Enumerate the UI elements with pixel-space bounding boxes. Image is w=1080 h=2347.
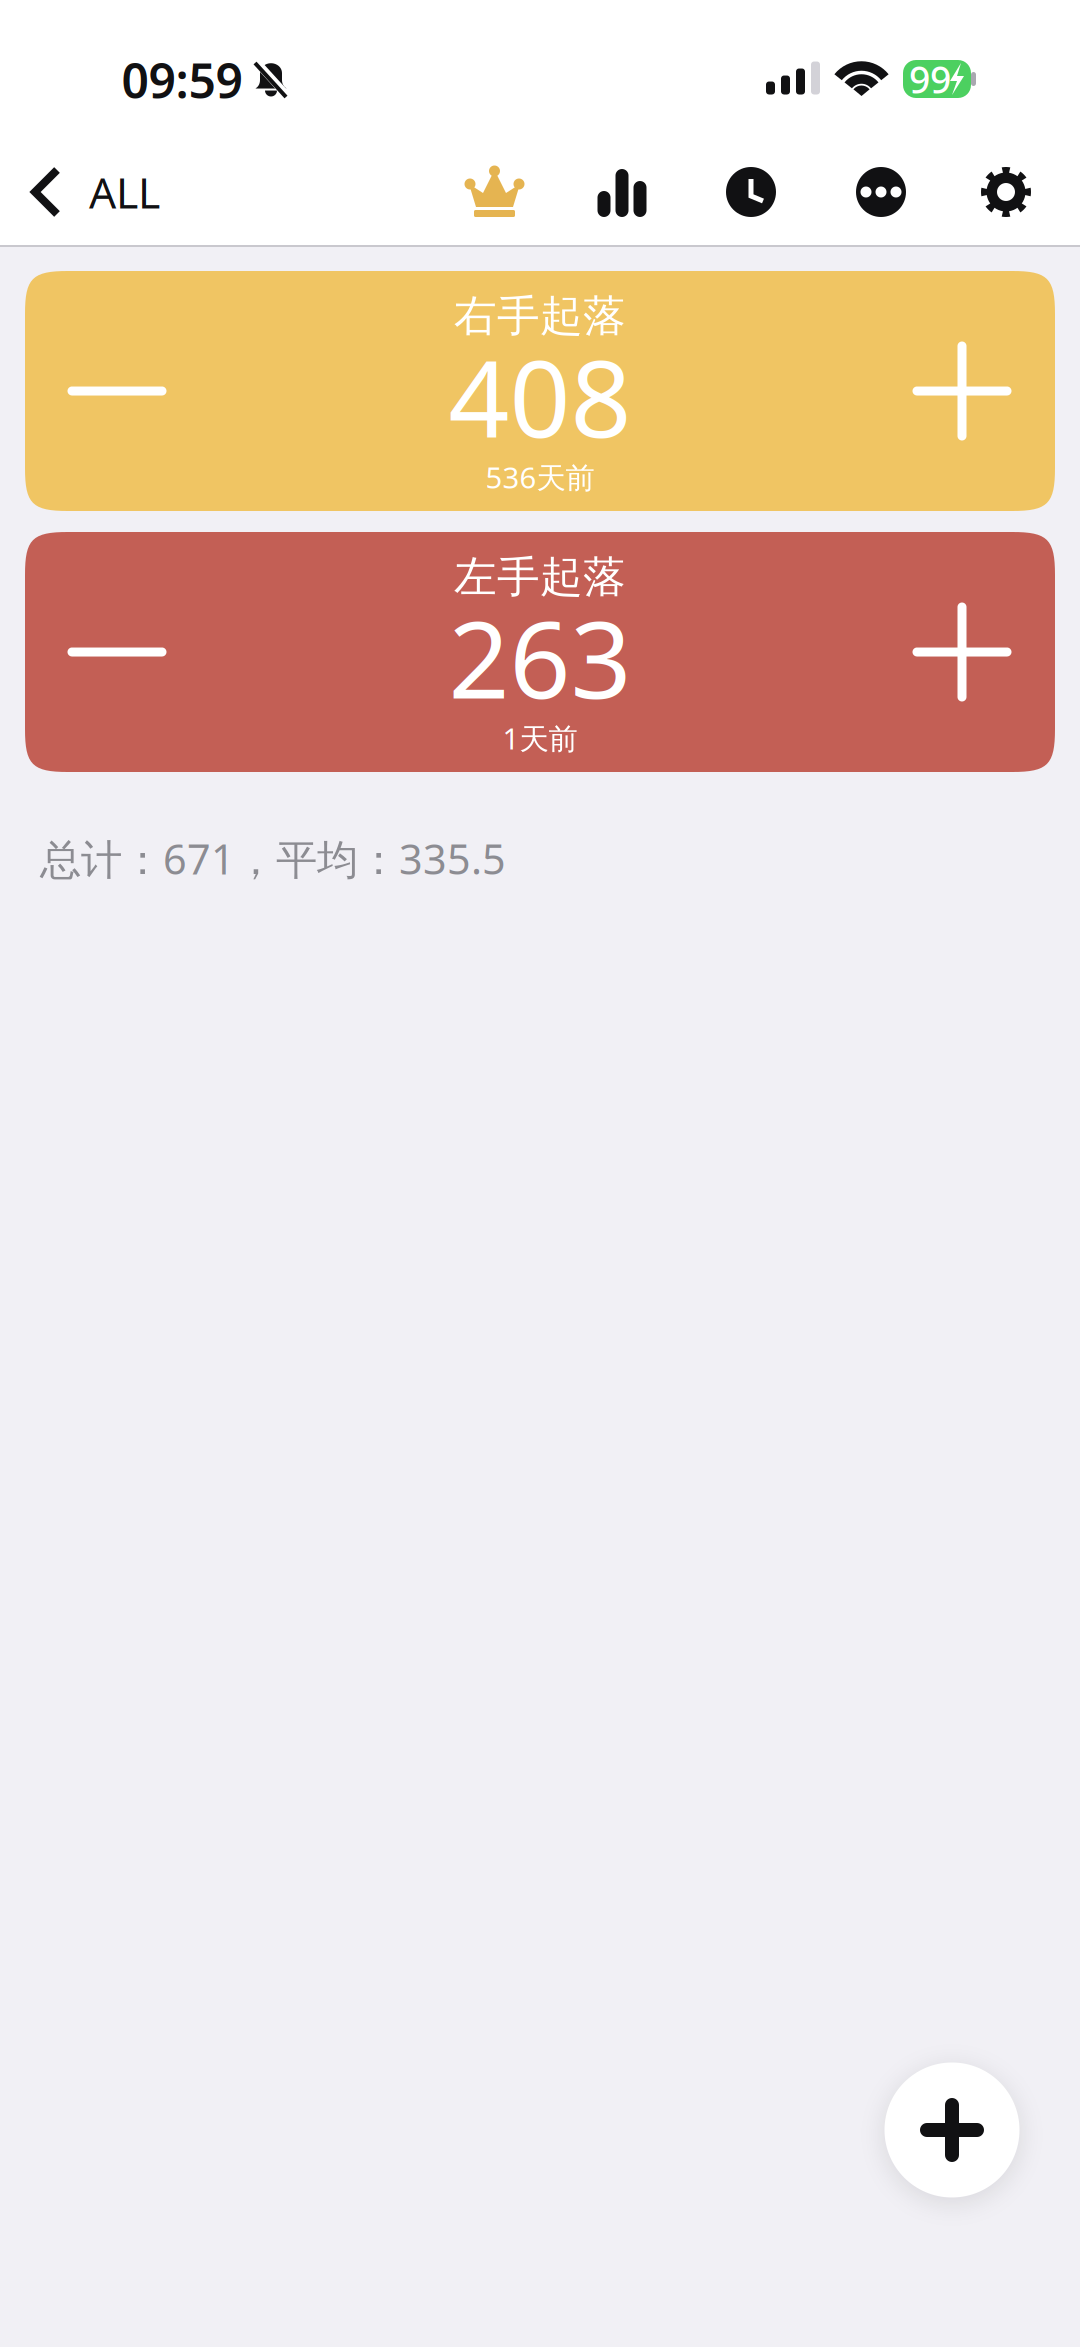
staticText: 99 <box>909 54 951 104</box>
button[interactable]: History <box>718 158 784 226</box>
button[interactable]: ALL <box>2 141 188 243</box>
button[interactable]: Statistics <box>589 159 655 227</box>
button[interactable]: Premium <box>463 157 535 225</box>
button[interactable]: Increase 右手起落 <box>862 271 1062 511</box>
staticText: ALL <box>89 164 160 220</box>
staticText: 总计：671，平均：335.5 <box>40 831 506 886</box>
staticText: 1天前 <box>502 718 577 757</box>
staticText: 左手起落 <box>454 551 626 603</box>
staticText: 408 <box>448 325 631 467</box>
staticText: 09:59 <box>121 48 242 112</box>
button[interactable]: Add counter <box>877 2055 1027 2205</box>
button[interactable]: Decrease 右手起落 <box>17 271 217 511</box>
button[interactable]: Decrease 左手起落 <box>17 532 217 772</box>
staticText: 右手起落 <box>454 290 626 342</box>
staticText: 263 <box>448 586 631 728</box>
button[interactable]: Settings <box>973 158 1039 226</box>
button[interactable]: More <box>848 158 914 226</box>
button[interactable]: Increase 左手起落 <box>862 532 1062 772</box>
staticText: 536天前 <box>485 457 594 496</box>
